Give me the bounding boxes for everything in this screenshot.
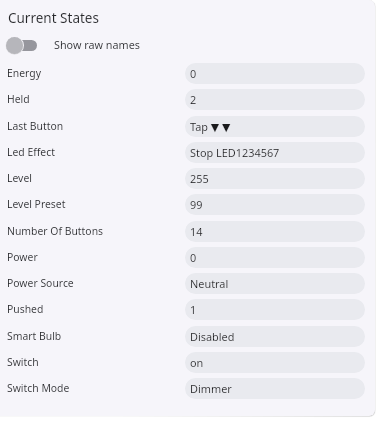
staticText: Disabled [190,329,235,344]
staticText: 1 [190,302,197,317]
button[interactable]: Last Button [0,113,375,139]
button[interactable]: Switch [0,349,375,375]
staticText: Led Effect [7,145,185,159]
button[interactable]: Led Effect [0,139,375,165]
staticText: Level Preset [7,197,185,211]
staticText: Smart Bulb [7,329,185,343]
button[interactable]: Power [0,244,375,270]
other: Show raw names toggle, off [6,35,37,55]
staticText: 255 [190,171,209,186]
button[interactable]: Level Preset [0,191,375,217]
staticText: Neutral [190,276,229,291]
staticText: Energy [7,66,185,80]
button[interactable]: Level [0,165,375,191]
staticText: Switch Mode [7,381,185,395]
button[interactable]: Pushed [0,296,375,322]
button[interactable]: Smart Bulb [0,323,375,349]
staticText: 14 [190,224,203,239]
button[interactable]: Number Of Buttons [0,218,375,244]
button[interactable]: Power Source [0,270,375,296]
staticText: Current States [8,9,99,27]
staticText: Number Of Buttons [7,224,185,238]
staticText: Switch [7,355,185,369]
staticText: Tap ▼ ▼ [190,119,231,134]
staticText: Held [7,92,185,106]
staticText: 0 [190,66,197,81]
staticText: Power [7,250,185,264]
staticText: on [190,355,204,370]
staticText: 99 [190,197,203,212]
button[interactable]: Switch Mode [0,375,375,401]
staticText: Show raw names [54,37,140,52]
button[interactable]: Show raw names toggle, off [6,35,140,55]
staticText: Stop LED1234567 [190,145,280,160]
staticText: 2 [190,92,197,107]
button[interactable]: Energy [0,60,375,86]
staticText: Last Button [7,119,185,133]
staticText: Pushed [7,302,185,316]
button[interactable]: Held [0,86,375,112]
staticText: Dimmer [190,381,232,396]
staticText: Level [7,171,185,185]
staticText: 0 [190,250,197,265]
staticText: Power Source [7,276,185,290]
